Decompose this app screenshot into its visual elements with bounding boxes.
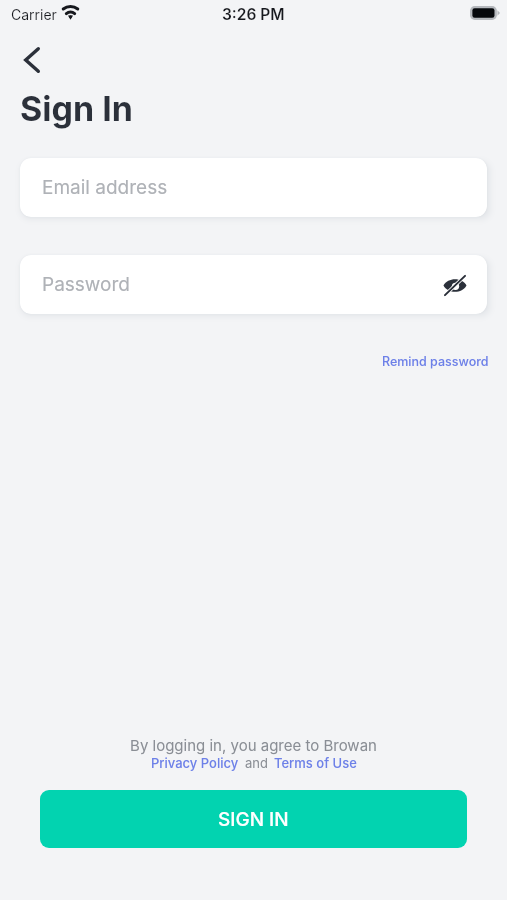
staticText: SIGN IN [218, 808, 289, 831]
button[interactable]: Back [8, 36, 56, 84]
staticText: Carrier [11, 6, 57, 23]
button[interactable]: SIGN IN [40, 790, 467, 848]
staticText: Terms of Use [274, 755, 357, 771]
staticText: Email address [42, 176, 168, 199]
button[interactable]: Password [20, 255, 487, 314]
button[interactable]: Email address [20, 158, 487, 217]
button[interactable]: Remind password [376, 349, 495, 374]
button[interactable]: Terms of Use [274, 755, 357, 771]
staticText: Password [42, 273, 130, 296]
staticText: By logging in, you agree to Browan [130, 736, 377, 754]
staticText: Remind password [382, 354, 489, 369]
staticText: Privacy Policy [151, 755, 239, 771]
staticText: and [245, 755, 268, 771]
staticText: Sign In [20, 88, 133, 129]
button[interactable]: Privacy Policy [151, 755, 239, 771]
staticText: 3:26 PM [222, 5, 285, 24]
button[interactable]: Show password [433, 263, 477, 307]
